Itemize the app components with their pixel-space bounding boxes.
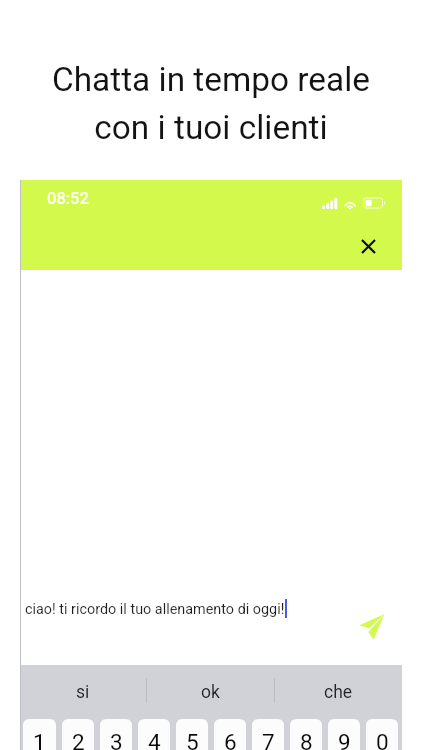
- button[interactable]: 6: [214, 719, 246, 750]
- button[interactable]: 7: [252, 719, 284, 750]
- staticText: che: [324, 682, 353, 703]
- staticText: 08:52: [47, 189, 89, 208]
- button[interactable]: 3: [100, 719, 132, 750]
- button[interactable]: 8: [290, 719, 322, 750]
- staticText: 3: [110, 729, 123, 750]
- staticText: 0: [376, 729, 389, 750]
- button[interactable]: Send: [357, 611, 387, 641]
- staticText: 4: [148, 729, 161, 750]
- button[interactable]: 0: [366, 719, 398, 750]
- button[interactable]: 2: [62, 719, 94, 750]
- staticText: ok: [201, 682, 220, 703]
- button[interactable]: 4: [138, 719, 170, 750]
- staticText: 5: [186, 729, 199, 750]
- button[interactable]: ok: [147, 665, 274, 719]
- staticText: si: [76, 682, 90, 703]
- button[interactable]: Close: [353, 231, 383, 261]
- staticText: 7: [262, 729, 275, 750]
- button[interactable]: che: [275, 665, 402, 719]
- button[interactable]: 1: [23, 719, 56, 750]
- staticText: 9: [338, 729, 351, 750]
- staticText: ciao! ti ricordo il tuo allenamento di o…: [25, 601, 285, 618]
- staticText: 8: [300, 729, 313, 750]
- button[interactable]: 9: [328, 719, 360, 750]
- staticText: 2: [72, 729, 85, 750]
- staticText: 6: [224, 729, 237, 750]
- staticText: Chatta in tempo reale con i tuoi clienti: [0, 60, 422, 147]
- staticText: 1: [33, 729, 46, 750]
- button[interactable]: si: [20, 665, 146, 719]
- button[interactable]: 5: [176, 719, 208, 750]
